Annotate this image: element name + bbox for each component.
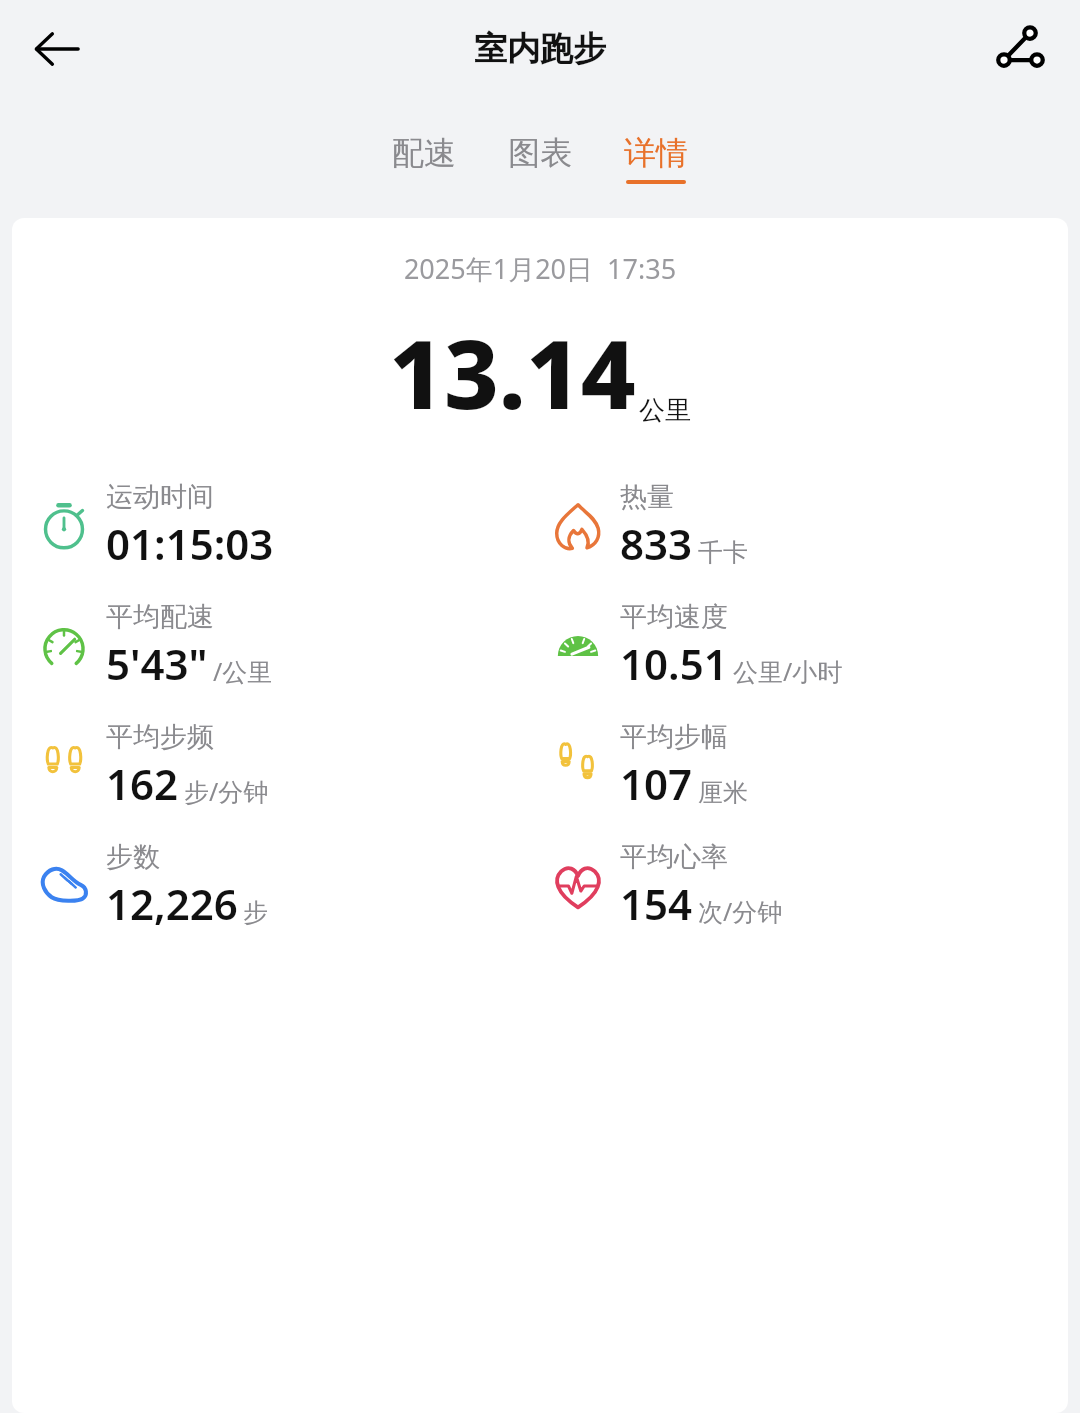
button[interactable]: 配速 [380,129,468,188]
button[interactable]: 运动时间 [36,480,540,572]
button[interactable]: 图表 [496,129,584,188]
staticText: 2025年1月20日 17:35 [12,250,1068,287]
staticText: 833 [620,515,693,572]
button[interactable]: 平均步幅 [550,720,1068,812]
staticText: 平均步幅 [620,720,728,754]
button[interactable]: 平均速度 [550,600,1068,692]
staticText: 公里 [639,394,691,427]
staticText: 公里/小时 [733,654,843,688]
staticText: 运动时间 [106,480,214,514]
staticText: 13.14 [389,307,636,436]
staticText: 10.51 [620,635,728,692]
staticText: 01:15:03 [106,515,274,572]
button[interactable]: 热量 [550,480,1068,572]
staticText: 热量 [620,480,674,514]
staticText: 12,226 [106,875,238,932]
button[interactable]: 详情 [612,129,700,188]
staticText: 室内跑步 [474,28,606,70]
staticText: 次/分钟 [698,894,783,928]
staticText: /公里 [213,654,273,688]
staticText: 162 [106,755,179,812]
button[interactable]: Share [976,6,1062,92]
staticText: 107 [620,755,693,812]
staticText: 平均配速 [106,600,214,634]
staticText: 千卡 [698,537,748,568]
staticText: 平均心率 [620,840,728,874]
staticText: 步/分钟 [184,774,269,808]
staticText: 配速 [392,133,456,173]
staticText: 平均速度 [620,600,728,634]
staticText: 详情 [624,133,688,173]
staticText: 图表 [508,133,572,173]
button[interactable]: 步数 [36,840,540,932]
staticText: 厘米 [698,777,748,808]
button[interactable]: 平均配速 [36,600,540,692]
staticText: 步数 [106,840,160,874]
staticText: 154 [620,875,693,932]
staticText: 5'43" [106,635,208,692]
staticText: 平均步频 [106,720,214,754]
button[interactable]: 平均心率 [550,840,1068,932]
staticText: 步 [243,897,268,928]
button[interactable]: Back [14,6,100,92]
button[interactable]: 平均步频 [36,720,540,812]
